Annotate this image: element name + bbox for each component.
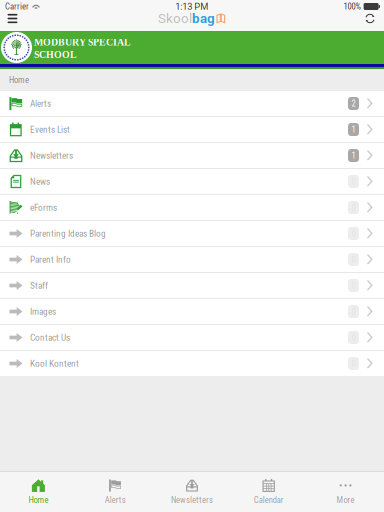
button[interactable]: Calendar (230, 472, 307, 512)
staticText: Carrier (5, 1, 29, 12)
button[interactable]: Alerts (0, 91, 384, 116)
button[interactable]: More (307, 472, 384, 512)
staticText: 1:13 PM (175, 1, 208, 12)
staticText: Newsletters (171, 495, 213, 505)
staticText: MODBURY SPECIAL (34, 37, 131, 48)
staticText: bag (192, 11, 215, 26)
button[interactable]: Kool Kontent (0, 351, 384, 376)
staticText: Calendar (254, 495, 284, 505)
button[interactable]: Staff (0, 273, 384, 298)
button[interactable]: Newsletters (154, 472, 230, 512)
button[interactable]: eForms (0, 195, 384, 220)
staticText: 2 (351, 98, 355, 109)
staticText: More (337, 495, 355, 505)
staticText: Events List (30, 124, 70, 135)
staticText: SCHOOL (34, 49, 77, 60)
button[interactable]: Refresh (360, 13, 380, 24)
staticText: 100% (344, 1, 361, 12)
staticText: eForms (30, 202, 57, 213)
staticText: Home (9, 75, 29, 85)
button[interactable]: News (0, 169, 384, 194)
button[interactable]: Parent Info (0, 247, 384, 272)
staticText: 1 (351, 150, 355, 161)
staticText: Parenting Ideas Blog (30, 228, 106, 239)
staticText: Staff (30, 280, 48, 291)
button[interactable]: Contact Us (0, 325, 384, 350)
staticText: Parent Info (30, 254, 71, 265)
staticText: Alerts (105, 495, 126, 505)
staticText: Home (28, 495, 48, 505)
staticText: Alerts (30, 98, 51, 109)
button[interactable]: Alerts (77, 472, 154, 512)
button[interactable]: Events List (0, 117, 384, 142)
staticText: Kool Kontent (30, 358, 79, 369)
staticText: Contact Us (30, 332, 70, 343)
staticText: Skool (158, 11, 192, 26)
staticText: Images (30, 306, 56, 317)
staticText: News (30, 176, 50, 187)
button[interactable]: Newsletters (0, 143, 384, 168)
staticText: 1 (351, 124, 355, 135)
button[interactable]: Menu (1, 13, 24, 24)
button[interactable]: Images (0, 299, 384, 324)
staticText: Newsletters (30, 150, 73, 161)
button[interactable]: Home (0, 472, 77, 512)
button[interactable]: Parenting Ideas Blog (0, 221, 384, 246)
